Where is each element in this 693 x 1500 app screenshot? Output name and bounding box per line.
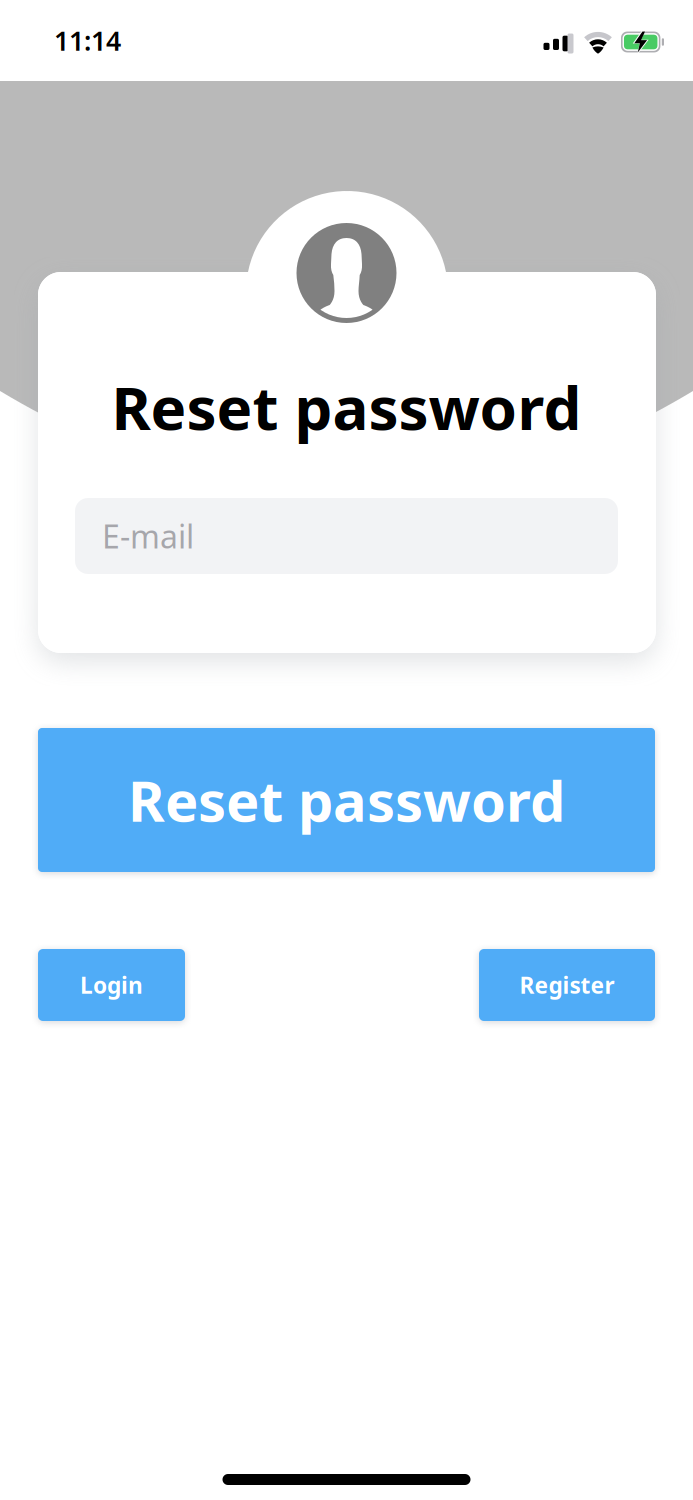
staticText: Register [519,970,614,1000]
button[interactable]: Login [38,949,185,1021]
staticText: Reset password [128,763,565,837]
staticText: Reset password [111,367,581,447]
button[interactable]: E-mail [75,498,618,574]
button[interactable]: Reset password [38,728,655,872]
staticText: E-mail [102,515,194,557]
staticText: 11:14 [54,23,121,58]
button[interactable]: Register [479,949,655,1021]
staticText: Login [80,970,143,1000]
